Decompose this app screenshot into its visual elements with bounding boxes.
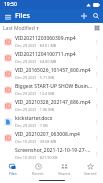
button[interactable]: Last Modified: [0, 24, 41, 33]
button[interactable]: Recent: [25, 161, 51, 177]
button[interactable]: More options: [92, 117, 101, 126]
button[interactable]: Switch to grid view: [93, 24, 101, 32]
staticText: 19:50: [4, 1, 17, 8]
staticText: Recent: [32, 171, 44, 176]
staticText: Dec 10 2021 · 821.90 KB: [15, 155, 58, 160]
button[interactable]: More options: [92, 53, 101, 62]
staticText: Dec 29 2021 · 1.06 MB: [15, 107, 55, 112]
staticText: VID_20210207_063008.mp4: [15, 131, 80, 138]
button[interactable]: VID20211203060309.mp4: [0, 33, 103, 49]
button[interactable]: Starred: [77, 161, 103, 177]
staticText: Dec 29 2021 · 12.4 MB: [15, 91, 55, 96]
staticText: kickstarter.docx: [15, 115, 53, 122]
staticText: VID_20165026_101457_800.mp4: [15, 67, 91, 74]
button[interactable]: Open navigation drawer: [2, 11, 13, 22]
staticText: Dec 29 2021 · 64.00 MB: [15, 59, 57, 64]
staticText: Starred: [84, 171, 97, 176]
button[interactable]: VID20211204100711.mp4: [0, 49, 103, 65]
button[interactable]: Shared: [51, 161, 77, 177]
button[interactable]: Screenshot_2021-12-10-19-27-52-: [0, 145, 103, 161]
button[interactable]: kickstarter.docx: [0, 113, 103, 129]
staticText: Files: [15, 11, 30, 21]
staticText: Dec 29 2021 · 5.71 MB: [15, 75, 55, 80]
button[interactable]: More options: [92, 133, 101, 142]
button[interactable]: More options: [92, 149, 101, 158]
button[interactable]: More options: [92, 69, 101, 78]
staticText: Files: [9, 171, 17, 176]
staticText: Dec 29 2021 · 7 KB: [15, 123, 48, 128]
staticText: Biggest START-UP SHOW Business: [15, 83, 92, 90]
button[interactable]: Search: [90, 10, 102, 22]
staticText: VID20211204100711.mp4: [15, 51, 76, 58]
button[interactable]: Biggest START-UP SHOW Business: [0, 81, 103, 97]
button[interactable]: More options: [92, 37, 101, 46]
button[interactable]: More options: [92, 101, 101, 110]
staticText: Last Modified: [3, 25, 35, 32]
staticText: VID_20210328_202147_886.mp4: [15, 99, 91, 106]
staticText: Dec 29 2021 · 83.01 MB: [15, 43, 57, 48]
button[interactable]: Files: [0, 161, 25, 177]
staticText: Screenshot_2021-12-10-19-27-52-: [15, 147, 92, 154]
staticText: VID20211203060309.mp4: [15, 35, 76, 42]
staticText: Shared: [58, 171, 70, 176]
button[interactable]: VID_20210207_063008.mp4: [0, 129, 103, 145]
staticText: Dec 10 2021 · 39.58 MB: [15, 139, 57, 144]
button[interactable]: Add: [78, 10, 90, 22]
button[interactable]: More options: [92, 85, 101, 94]
button[interactable]: VID_20210328_202147_886.mp4: [0, 97, 103, 113]
button[interactable]: VID_20165026_101457_800.mp4: [0, 65, 103, 81]
